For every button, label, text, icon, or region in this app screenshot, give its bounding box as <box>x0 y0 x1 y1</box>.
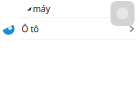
staticText: Ô tô <box>21 23 38 34</box>
button[interactable]: máy <box>0 0 137 17</box>
staticText: máy <box>33 3 50 14</box>
button[interactable]: Ô tô <box>0 18 137 39</box>
